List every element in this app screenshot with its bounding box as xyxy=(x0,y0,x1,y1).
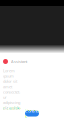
staticText: Assistant xyxy=(11,59,27,64)
staticText: Continue xyxy=(25,108,39,119)
button[interactable]: Continue xyxy=(25,110,39,116)
staticText: Lorem ipsum dolor sit amet consectetur a… xyxy=(3,68,20,110)
